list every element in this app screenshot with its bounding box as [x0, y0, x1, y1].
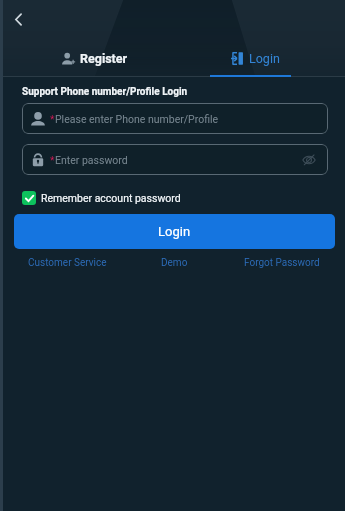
staticText: Register — [80, 51, 128, 66]
button[interactable]: Demo — [121, 255, 228, 271]
staticText: * — [50, 113, 55, 125]
button[interactable]: Register — [15, 43, 175, 73]
button[interactable]: Forgot Password — [228, 255, 335, 271]
button[interactable]: Remember account password — [22, 191, 181, 205]
staticText: Forgot Password — [244, 257, 320, 269]
button[interactable]: Login — [14, 214, 335, 249]
staticText: Customer Service — [28, 257, 107, 269]
staticText: Remember account password — [41, 192, 181, 204]
staticText: Support Phone number/Profile Login — [22, 86, 188, 98]
button[interactable]: * — [22, 103, 328, 134]
staticText: * — [50, 154, 55, 166]
button[interactable]: Customer Service — [14, 255, 121, 271]
staticText: Please enter Phone number/Profile — [55, 113, 219, 125]
button[interactable]: Back — [0, 1, 36, 37]
button[interactable]: * — [22, 144, 328, 175]
staticText: Login — [158, 224, 191, 239]
staticText: Demo — [161, 257, 188, 269]
staticText: Login — [249, 51, 280, 66]
button[interactable]: Show password — [299, 150, 319, 170]
staticText: Enter password — [55, 154, 128, 166]
button[interactable]: Login — [175, 43, 336, 73]
